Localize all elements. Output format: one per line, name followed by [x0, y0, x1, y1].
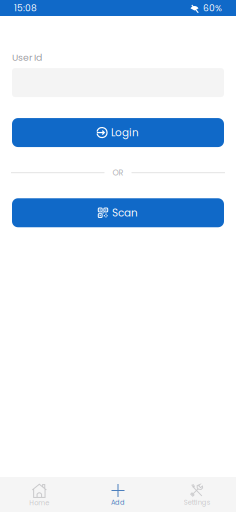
button[interactable]: Home: [0, 476, 79, 512]
staticText: Add: [111, 498, 125, 507]
button[interactable]: Add: [79, 477, 157, 512]
staticText: 60%: [203, 2, 222, 14]
staticText: 15:08: [14, 2, 37, 14]
button[interactable]: Scan: [12, 198, 224, 227]
staticText: OR: [112, 167, 123, 178]
staticText: Login: [111, 125, 139, 140]
staticText: User Id: [12, 51, 42, 64]
staticText: Settings: [184, 498, 210, 507]
button[interactable]: Settings: [157, 477, 236, 512]
staticText: Scan: [112, 205, 138, 220]
staticText: Home: [29, 498, 49, 508]
button[interactable]: Login: [12, 118, 224, 147]
